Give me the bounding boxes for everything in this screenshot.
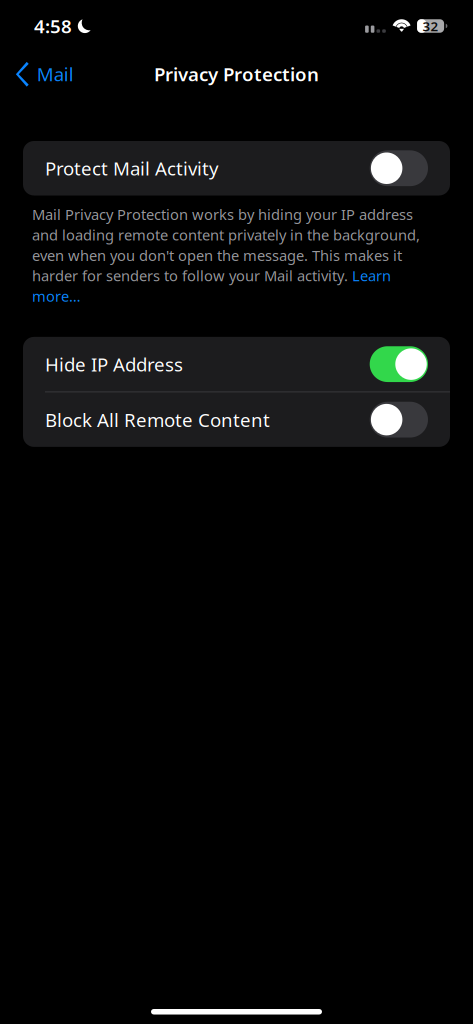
button[interactable]: Block All Remote Content: [23, 392, 450, 447]
button[interactable]: Hide IP Address: [23, 337, 450, 391]
button[interactable]: Mail: [0, 52, 84, 96]
staticText: Protect Mail Activity: [45, 156, 219, 181]
staticText: Block All Remote Content: [45, 407, 270, 432]
staticText: Mail Privacy Protection works by hiding …: [32, 204, 420, 306]
staticText: 4:58: [34, 14, 72, 38]
staticText: Hide IP Address: [45, 352, 183, 376]
button[interactable]: Protect Mail Activity: [23, 141, 450, 195]
staticText: Mail: [37, 62, 74, 86]
staticText: Privacy Protection: [154, 62, 319, 86]
staticText: 32: [423, 17, 439, 35]
